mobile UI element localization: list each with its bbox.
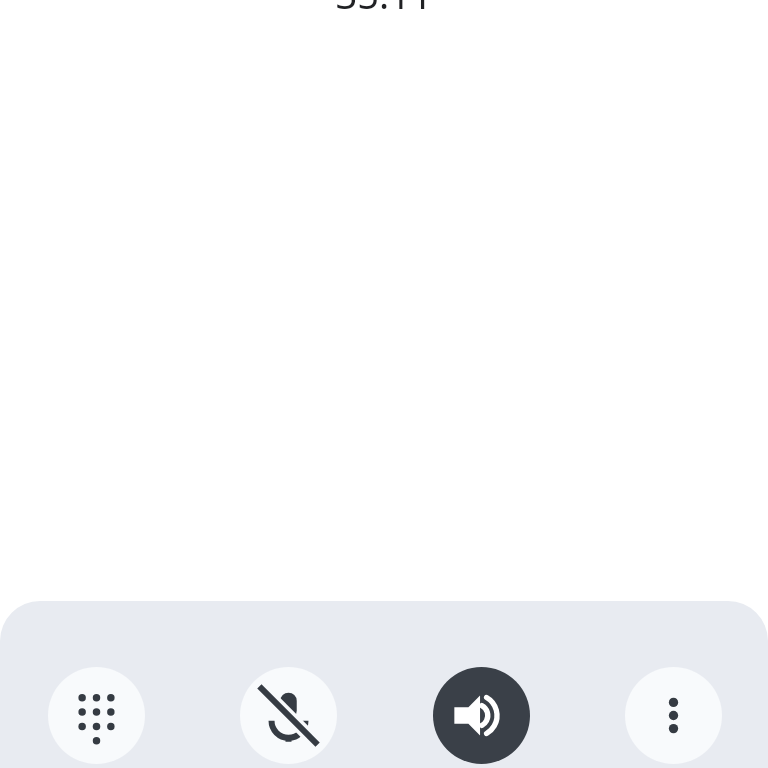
button[interactable]: Speaker [433,667,530,764]
button[interactable]: Dialpad [48,667,145,764]
staticText: 35:11 [335,0,433,14]
button[interactable]: More options [625,667,722,764]
button[interactable]: Mute microphone [240,667,337,764]
